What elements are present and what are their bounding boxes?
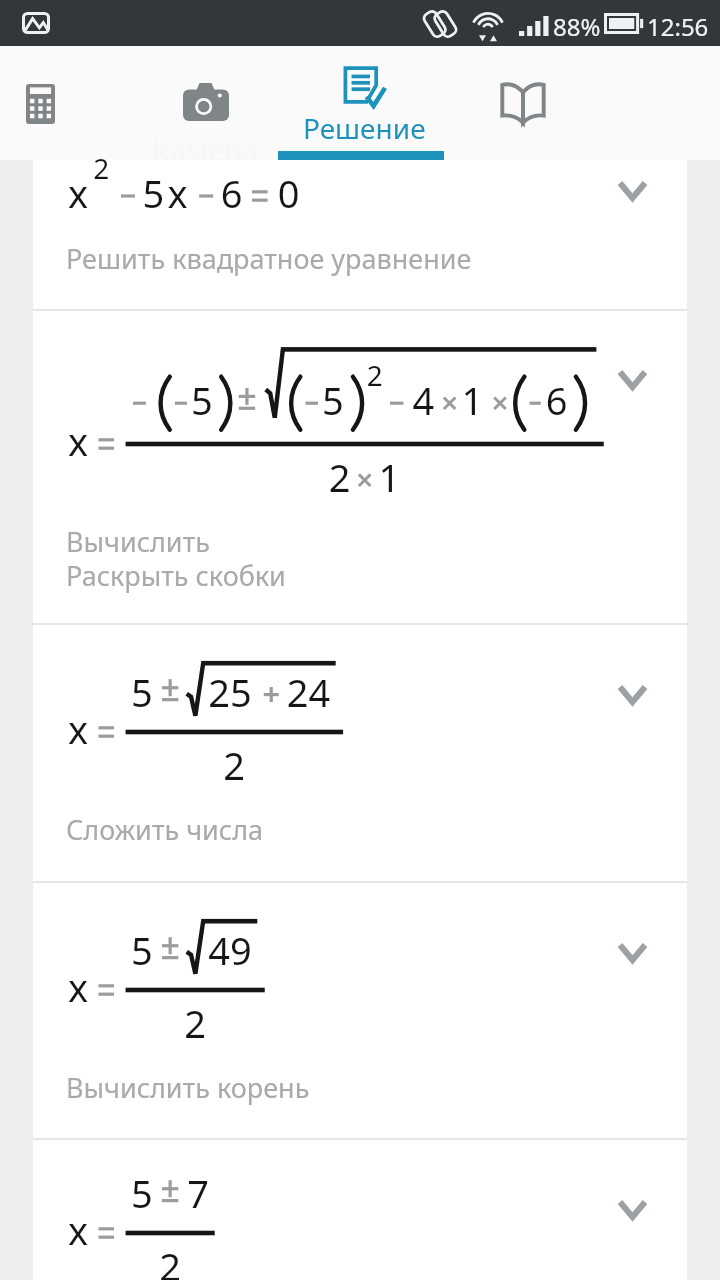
- button[interactable]: Калькулятор: [0, 46, 120, 160]
- button[interactable]: Вычислить: [33, 311, 687, 623]
- button[interactable]: Развернуть: [604, 356, 660, 402]
- staticText: 12:56: [647, 10, 709, 43]
- button[interactable]: Развернуть: [604, 1186, 660, 1232]
- staticText: Решение: [303, 109, 426, 147]
- staticText: Сложить числа: [66, 811, 264, 848]
- staticText: Вычислить: [66, 523, 210, 560]
- staticText: 88%: [553, 10, 601, 43]
- button[interactable]: Решить квадратное уравнение: [33, 160, 687, 309]
- button[interactable]: Развернуть: [604, 167, 660, 213]
- staticText: Раскрыть скобки: [66, 557, 286, 594]
- button[interactable]: Развернуть: [33, 1140, 687, 1280]
- button[interactable]: Сложить числа: [33, 625, 687, 881]
- button[interactable]: Учебник: [452, 46, 592, 160]
- staticText: Решить квадратное уравнение: [66, 240, 472, 277]
- staticText: Вычислить корень: [66, 1069, 310, 1106]
- button[interactable]: Развернуть: [604, 671, 660, 717]
- button[interactable]: Вычислить корень: [33, 883, 687, 1138]
- button[interactable]: Развернуть: [604, 929, 660, 975]
- button[interactable]: Решение: [278, 46, 444, 160]
- button[interactable]: Камера: [128, 46, 278, 160]
